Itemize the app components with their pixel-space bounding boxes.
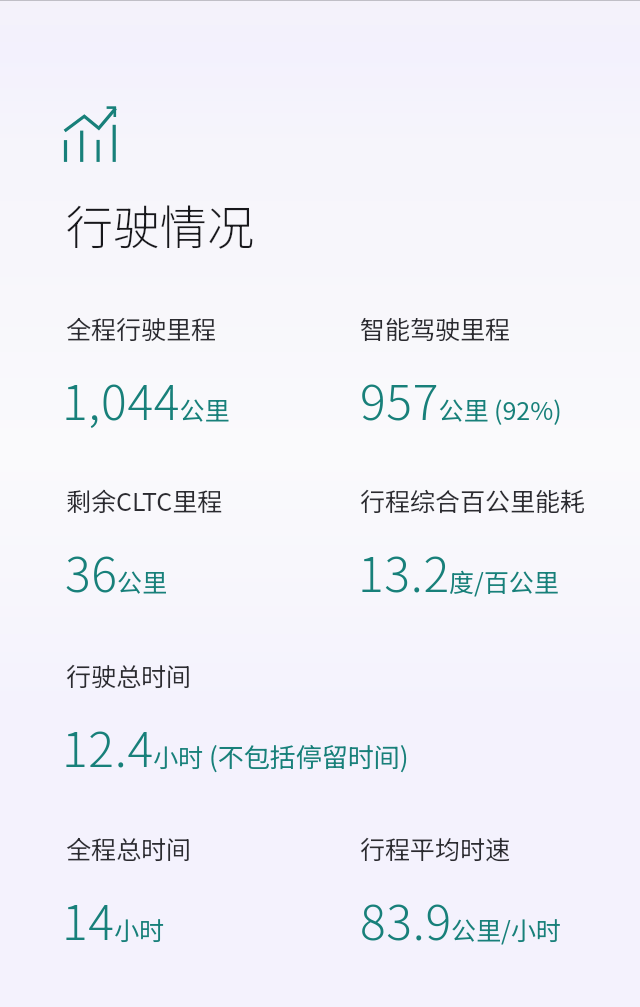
staticText: 智能驾驶里程 — [360, 310, 511, 346]
staticText: 剩余CLTC里程 — [66, 482, 223, 518]
staticText: 行程综合百公里能耗 — [360, 482, 586, 518]
staticText: 14小时 — [62, 884, 165, 954]
button[interactable]: Driving statistics — [60, 100, 120, 166]
staticText: 行驶情况 — [66, 190, 254, 258]
staticText: 36公里 — [65, 536, 168, 606]
staticText: 全程行驶里程 — [66, 310, 217, 346]
staticText: 957公里 (92%) — [360, 364, 562, 434]
staticText: 1,044公里 — [62, 364, 230, 434]
staticText: 83.9公里/小时 — [360, 884, 561, 954]
staticText: 行驶总时间 — [66, 657, 192, 693]
staticText: 13.2度/百公里 — [358, 536, 559, 606]
staticText: 全程总时间 — [66, 830, 192, 866]
staticText: 12.4小时 (不包括停留时间) — [62, 711, 409, 781]
staticText: 行程平均时速 — [360, 830, 511, 866]
